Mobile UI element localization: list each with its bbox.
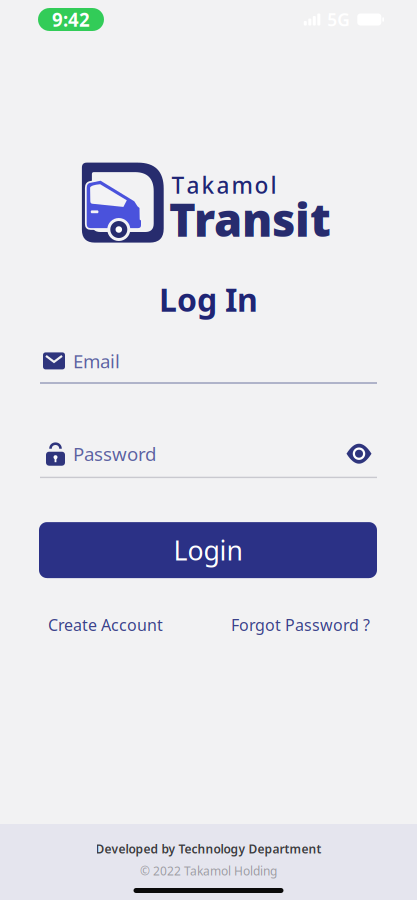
staticText: Create Account [48, 614, 163, 635]
button[interactable]: Email [0, 348, 417, 384]
staticText: © 2022 Takamol Holding [140, 863, 277, 879]
staticText: Forgot Password ? [231, 614, 370, 635]
staticText: Login [173, 532, 242, 568]
staticText: Developed by Technology Department [95, 841, 321, 857]
button[interactable]: Password [0, 441, 417, 478]
staticText: Password [73, 441, 156, 466]
staticText: 9:42 [52, 7, 90, 32]
button[interactable]: Create Account [48, 614, 163, 635]
staticText: Log In [159, 278, 258, 320]
button[interactable]: Login [0, 522, 417, 578]
staticText: T a k a m o l [171, 170, 276, 200]
staticText: Transit [169, 189, 331, 249]
staticText: 5G [327, 8, 350, 31]
staticText: Email [73, 348, 120, 373]
button[interactable]: Forgot Password ? [231, 614, 370, 635]
button[interactable]: Show password [346, 441, 372, 467]
